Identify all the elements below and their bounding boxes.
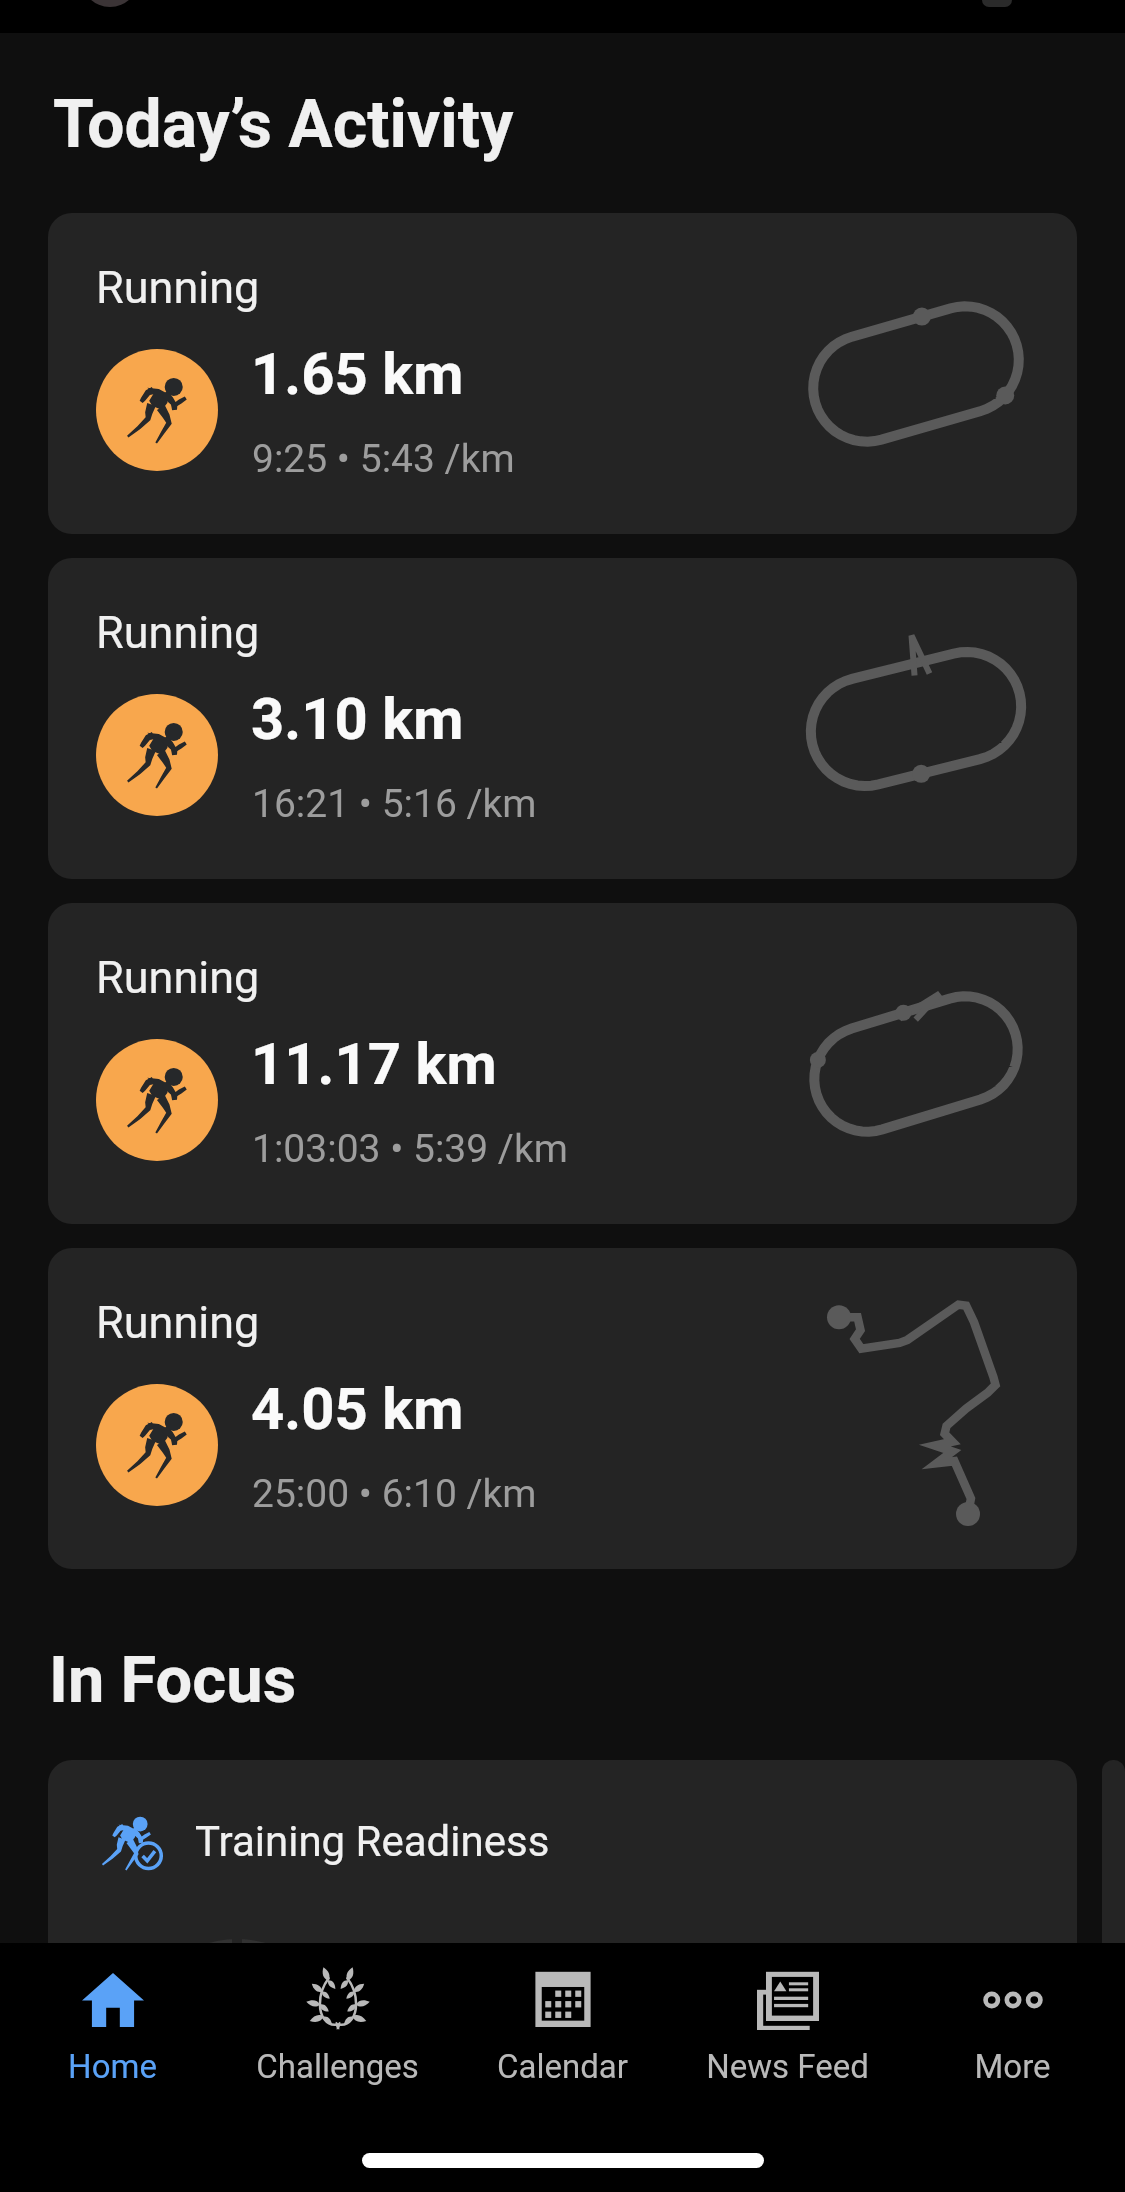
button[interactable]: Running xyxy=(48,213,1077,534)
staticText: 4.05 km xyxy=(251,1375,464,1443)
staticText: 1:03:03 • 5:39 /km xyxy=(252,1126,568,1172)
staticText: 11.17 km xyxy=(251,1030,497,1098)
staticText: 3.10 km xyxy=(251,685,464,753)
staticText: Challenges xyxy=(256,2047,419,2086)
staticText: Running xyxy=(96,261,260,314)
staticText: 1.65 km xyxy=(251,340,464,408)
button[interactable]: Running xyxy=(48,1248,1077,1569)
button[interactable]: More xyxy=(900,1943,1125,2103)
staticText: Home xyxy=(68,2047,157,2086)
staticText: More xyxy=(974,2047,1051,2086)
staticText: 25:00 • 6:10 /km xyxy=(252,1471,537,1517)
button[interactable]: Home xyxy=(0,1943,225,2103)
button[interactable]: Training Readiness xyxy=(48,1760,1077,1960)
staticText: 16:21 • 5:16 /km xyxy=(252,781,537,827)
button[interactable]: Running xyxy=(48,903,1077,1224)
button[interactable]: Running xyxy=(48,558,1077,879)
staticText: Today’s Activity xyxy=(53,86,514,163)
staticText: Running xyxy=(96,606,260,659)
staticText: Training Readiness xyxy=(195,1817,550,1866)
staticText: News Feed xyxy=(706,2047,869,2086)
staticText: Calendar xyxy=(497,2047,628,2086)
button[interactable]: Challenges xyxy=(225,1943,450,2103)
staticText: 9:25 • 5:43 /km xyxy=(252,436,515,482)
staticText: Running xyxy=(96,1296,260,1349)
button[interactable]: Calendar xyxy=(450,1943,675,2103)
button[interactable]: News Feed xyxy=(675,1943,900,2103)
staticText: Running xyxy=(96,951,260,1004)
staticText: In Focus xyxy=(49,1642,297,1718)
